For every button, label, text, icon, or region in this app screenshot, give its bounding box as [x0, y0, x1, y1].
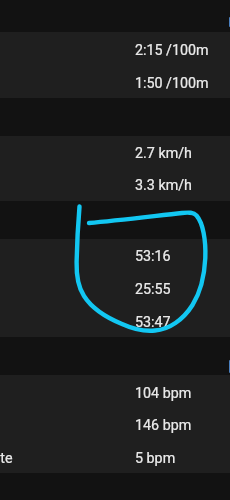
staticText: 53:47 — [135, 314, 171, 331]
staticText: 1:50 /100m — [135, 75, 209, 92]
staticText: 2:15 /100m — [135, 42, 209, 59]
staticText: 2.7 km/h — [135, 145, 192, 162]
button[interactable]: 104 bpm — [0, 376, 230, 409]
button[interactable]: 53:16 — [0, 239, 230, 272]
button[interactable]: 3.3 km/h — [0, 168, 230, 201]
staticText: 104 bpm — [135, 385, 192, 402]
staticText: 5 bpm — [135, 450, 176, 467]
button[interactable]: 53:47 — [0, 305, 230, 338]
button[interactable]: 1:50 /100m — [0, 66, 230, 99]
staticText: rate — [0, 450, 13, 467]
button[interactable]: Sort heart rate column — [229, 360, 230, 373]
button[interactable]: 2:15 /100m — [0, 33, 230, 66]
button[interactable]: 25:55 — [0, 272, 230, 305]
button[interactable]: rate — [0, 441, 230, 474]
staticText: 25:55 — [135, 281, 171, 298]
staticText: 53:16 — [135, 248, 171, 265]
button[interactable]: Sort pace column — [229, 17, 230, 27]
staticText: 3.3 km/h — [135, 177, 192, 194]
button[interactable]: 2.7 km/h — [0, 136, 230, 169]
button[interactable]: 146 bpm — [0, 408, 230, 441]
staticText: 146 bpm — [135, 417, 192, 434]
